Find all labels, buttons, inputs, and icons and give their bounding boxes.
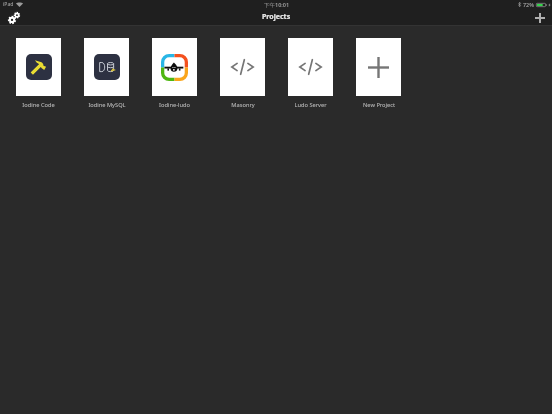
staticText: Iodine Code <box>22 101 55 109</box>
staticText: Iodine MySQL <box>88 101 126 109</box>
button[interactable]: Masonry <box>220 38 265 109</box>
staticText: 下午10:01 <box>264 1 290 9</box>
staticText: Ludo Server <box>294 101 327 109</box>
button[interactable]: Settings <box>3 7 24 28</box>
staticText: New Project <box>363 101 395 109</box>
staticText: Iodine-ludo <box>159 101 190 109</box>
button[interactable]: Ludo Server <box>288 38 333 109</box>
staticText: Masonry <box>231 101 255 109</box>
staticText: Projects <box>262 12 291 22</box>
button[interactable]: Iodine MySQL <box>84 38 129 109</box>
staticText: iPad <box>3 1 14 8</box>
button[interactable]: Iodine-ludo <box>152 38 197 109</box>
button[interactable]: Iodine Code <box>16 38 61 109</box>
button[interactable]: New Project <box>356 38 401 109</box>
staticText: 72% <box>523 1 534 8</box>
button[interactable]: Add project <box>530 8 550 28</box>
